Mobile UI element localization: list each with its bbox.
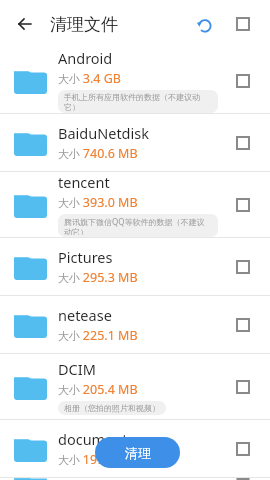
staticText: 大小 3.4 GB bbox=[58, 70, 121, 87]
staticText: 腾讯旗下微信QQ等软件的数据（不建议动它） bbox=[64, 216, 212, 235]
staticText: 相册（您拍的照片和视频） bbox=[64, 403, 160, 413]
button[interactable]: netease bbox=[0, 296, 270, 353]
button[interactable]: Undo bbox=[188, 8, 220, 40]
staticText: documents bbox=[58, 429, 135, 449]
staticText: 清理 bbox=[125, 445, 151, 461]
button[interactable]: .RecycleBinHW bbox=[0, 478, 270, 480]
button[interactable]: BaiduNetdisk bbox=[0, 114, 270, 171]
staticText: 大小 295.3 MB bbox=[58, 269, 138, 286]
staticText: tencent bbox=[58, 172, 110, 192]
button[interactable]: Select Android bbox=[228, 66, 258, 96]
button[interactable]: Select Pictures bbox=[228, 252, 258, 282]
button[interactable]: documents bbox=[0, 420, 270, 477]
staticText: 手机上所有应用软件的数据（不建议动它） bbox=[64, 92, 212, 111]
staticText: 清理文件 bbox=[50, 14, 118, 35]
button[interactable]: Select tencent bbox=[228, 190, 258, 220]
button[interactable]: Select .RecycleBinHW bbox=[228, 478, 258, 480]
button[interactable]: DCIM bbox=[0, 354, 270, 419]
staticText: BaiduNetdisk bbox=[58, 123, 149, 143]
staticText: 大小 740.6 MB bbox=[58, 145, 138, 162]
button[interactable]: Select BaiduNetdisk bbox=[228, 128, 258, 158]
button[interactable]: Android bbox=[0, 48, 270, 113]
staticText: 大小 225.1 MB bbox=[58, 327, 138, 344]
button[interactable]: Select DCIM bbox=[228, 372, 258, 402]
button[interactable]: Select all bbox=[228, 9, 258, 39]
staticText: 大小 205.4 MB bbox=[58, 381, 138, 398]
staticText: Pictures bbox=[58, 247, 113, 267]
staticText: 大小 393.0 MB bbox=[58, 194, 138, 211]
staticText: DCIM bbox=[58, 359, 96, 379]
button[interactable]: tencent bbox=[0, 172, 270, 237]
button[interactable]: 清理 bbox=[95, 437, 180, 468]
button[interactable]: Pictures bbox=[0, 238, 270, 295]
staticText: 大小 199.6 MB bbox=[58, 451, 138, 468]
button[interactable]: Select netease bbox=[228, 310, 258, 340]
button[interactable]: Select documents bbox=[228, 434, 258, 464]
staticText: Android bbox=[58, 48, 113, 68]
staticText: netease bbox=[58, 305, 112, 325]
button[interactable]: Back bbox=[6, 6, 42, 42]
